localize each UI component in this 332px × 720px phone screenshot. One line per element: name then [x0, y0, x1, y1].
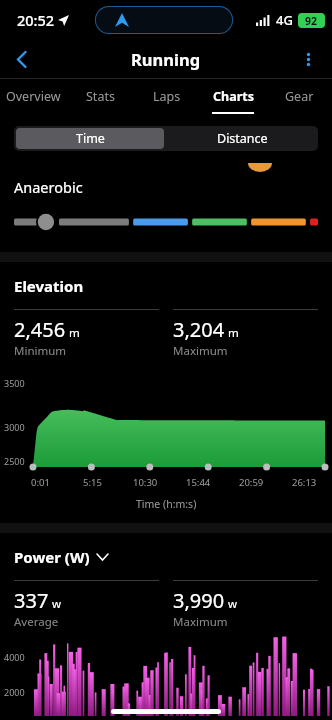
staticText: 2,456 [14, 316, 66, 343]
staticText: Anaerobic [14, 177, 83, 197]
staticText: 92 [305, 14, 318, 28]
button[interactable]: More options [290, 41, 326, 77]
staticText: 4G [276, 11, 293, 29]
button[interactable]: Stats [67, 78, 134, 114]
staticText: 20:59 [239, 476, 264, 489]
staticText: Average [14, 614, 59, 630]
staticText: 4000 [4, 651, 25, 663]
staticText: m [228, 325, 239, 341]
button[interactable]: Charts [200, 78, 266, 114]
staticText: 2000 [4, 686, 25, 698]
staticText: 20:52 [17, 10, 55, 30]
staticText: Laps [153, 88, 181, 105]
staticText: 0:01 [31, 476, 50, 489]
staticText: Power (W) [14, 547, 90, 567]
staticText: Gear [285, 88, 314, 105]
button[interactable]: Power (W) [14, 547, 108, 567]
staticText: 3,204 [173, 316, 225, 343]
staticText: 337 [14, 587, 49, 614]
staticText: 15:44 [186, 476, 211, 489]
staticText: w [228, 596, 238, 612]
button[interactable]: Back [2, 40, 42, 78]
staticText: m [69, 325, 80, 341]
staticText: Time [76, 130, 105, 147]
staticText: Distance [217, 130, 268, 147]
staticText: Minimum [14, 343, 67, 359]
staticText: Elevation [14, 276, 84, 296]
staticText: 3000 [4, 421, 25, 433]
staticText: 5:15 [83, 476, 102, 489]
button[interactable]: Distance [166, 126, 318, 151]
button[interactable]: Laps [134, 78, 200, 114]
staticText: 10:30 [133, 476, 158, 489]
staticText: Maximum [173, 343, 228, 359]
button[interactable]: Overview [0, 78, 67, 114]
staticText: 2500 [4, 455, 25, 467]
staticText: Maximum [173, 614, 228, 630]
staticText: w [52, 596, 62, 612]
button[interactable]: Time [16, 128, 164, 149]
staticText: Stats [86, 88, 115, 105]
staticText: 26:13 [292, 476, 317, 489]
staticText: 3,990 [173, 587, 225, 614]
staticText: Time (h:m:s) [136, 497, 197, 511]
staticText: Charts [213, 88, 254, 105]
staticText: 3500 [4, 377, 25, 389]
button[interactable]: Gear [266, 78, 332, 114]
staticText: Running [131, 48, 201, 70]
staticText: Overview [6, 88, 61, 105]
